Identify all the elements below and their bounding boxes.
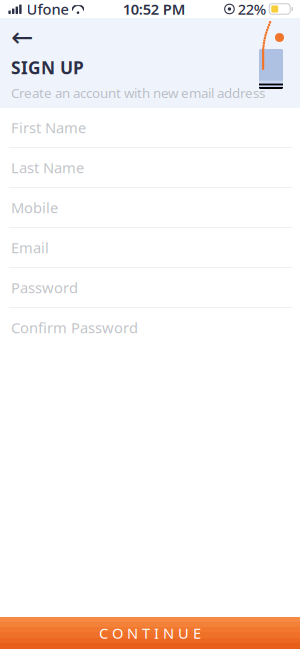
button[interactable]: Last Name <box>0 148 300 188</box>
button[interactable]: Back <box>11 27 39 47</box>
staticText: Confirm Password <box>11 318 138 337</box>
staticText: C O N T I N U E <box>99 623 201 643</box>
staticText: Mobile <box>11 198 58 217</box>
staticText: Sign up later <box>11 106 88 123</box>
button[interactable]: Email <box>0 228 300 268</box>
button[interactable]: Password <box>0 268 300 308</box>
button[interactable]: First Name <box>0 108 300 148</box>
staticText: Last Name <box>11 158 84 177</box>
staticText: 10:52 PM <box>123 0 186 19</box>
button[interactable]: Sign up later <box>11 106 88 123</box>
staticText: First Name <box>11 118 86 137</box>
staticText: ← <box>11 22 33 52</box>
button[interactable]: Mobile <box>0 188 300 228</box>
staticText: Ufone <box>26 0 68 19</box>
staticText: SIGN UP <box>11 56 84 79</box>
button[interactable]: Confirm Password <box>0 308 300 348</box>
staticText: 22% <box>238 0 266 19</box>
staticText: Password <box>11 278 78 297</box>
staticText: Create an account with new email address <box>11 84 265 102</box>
staticText: Email <box>11 238 49 257</box>
button[interactable]: C O N T I N U E <box>0 617 300 649</box>
